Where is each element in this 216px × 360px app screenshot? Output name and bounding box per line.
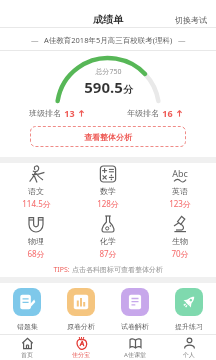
staticText: 切换考试 xyxy=(175,15,207,25)
staticText: A佳教育2018年5月高三百校联考(理科) xyxy=(44,35,173,45)
button[interactable]: — xyxy=(0,30,216,50)
staticText: 13 xyxy=(64,107,75,119)
staticText: 点击各科图标可查看整体分析 xyxy=(70,265,163,275)
staticText: 590.5 xyxy=(84,77,123,97)
staticText: 化学 xyxy=(100,236,116,246)
button[interactable]: 物理 xyxy=(0,214,72,259)
staticText: 个人 xyxy=(183,351,195,359)
button[interactable]: 语文 xyxy=(0,164,72,209)
staticText: 语文 xyxy=(28,186,44,196)
button[interactable]: 班级排名 xyxy=(29,107,85,119)
staticText: 68分 xyxy=(27,248,45,259)
staticText: 总分750 xyxy=(95,67,122,77)
staticText: 佳分宝 xyxy=(72,351,90,359)
staticText: Abc xyxy=(172,167,188,179)
staticText: — xyxy=(31,35,39,45)
button[interactable]: Abc xyxy=(144,164,216,209)
button[interactable]: 化学 xyxy=(72,214,144,259)
button[interactable]: 提升练习 xyxy=(162,288,216,331)
button[interactable]: 生物 xyxy=(144,214,216,259)
staticText: 原卷分析 xyxy=(67,322,95,331)
button[interactable]: 切换考试 xyxy=(175,15,207,25)
staticText: 查看整体分析 xyxy=(84,132,132,142)
staticText: 87分 xyxy=(99,248,117,259)
staticText: 70分 xyxy=(171,248,189,259)
button[interactable]: 试卷解析 xyxy=(108,288,162,331)
button[interactable]: 佳分宝 xyxy=(54,335,108,360)
staticText: 123分 xyxy=(169,198,191,209)
button[interactable]: 原卷分析 xyxy=(54,288,108,331)
staticText: TIPS: xyxy=(53,265,70,275)
staticText: 114.5分 xyxy=(22,198,51,209)
staticText: 班级排名 xyxy=(29,108,61,118)
staticText: 物理 xyxy=(28,236,44,246)
staticText: 年级排名 xyxy=(127,108,159,118)
button[interactable]: 首页 xyxy=(0,335,54,360)
button[interactable]: A佳课堂 xyxy=(108,335,162,360)
staticText: — xyxy=(178,35,186,45)
button[interactable]: 个人 xyxy=(162,335,216,360)
staticText: 生物 xyxy=(172,236,188,246)
staticText: 试卷解析 xyxy=(121,322,149,331)
staticText: 成绩单 xyxy=(93,13,123,26)
staticText: 16 xyxy=(162,107,173,119)
staticText: 提升练习 xyxy=(175,322,203,331)
button[interactable]: 查看整体分析 xyxy=(30,126,186,147)
staticText: 数学 xyxy=(100,186,116,196)
staticText: 分 xyxy=(123,83,133,96)
button[interactable]: 错题集 xyxy=(0,288,54,331)
staticText: A佳课堂 xyxy=(124,351,146,359)
staticText: 首页 xyxy=(21,351,33,359)
staticText: 128分 xyxy=(97,198,119,209)
button[interactable]: 数学 xyxy=(72,164,144,209)
staticText: 英语 xyxy=(172,186,188,196)
staticText: 错题集 xyxy=(17,322,38,331)
button[interactable]: 年级排名 xyxy=(127,107,183,119)
